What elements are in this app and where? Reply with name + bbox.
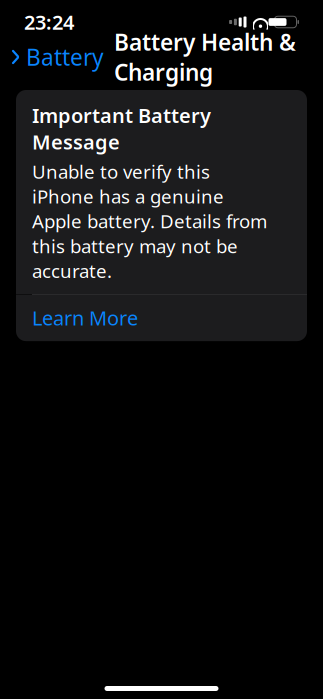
button[interactable]: Battery (0, 36, 104, 78)
staticText: Battery (26, 42, 104, 72)
staticText: Optimised Battery Charging (32, 644, 217, 699)
button[interactable]: Optimised Battery Charging (16, 656, 307, 689)
staticText: Learn More (32, 305, 138, 331)
staticText: Important Battery Message (32, 102, 211, 155)
staticText: Battery Health & Charging (114, 27, 296, 87)
staticText: 23:24 (24, 9, 74, 35)
button[interactable]: Learn More (16, 295, 307, 341)
staticText: Unable to verify this iPhone has a genui… (32, 159, 267, 283)
